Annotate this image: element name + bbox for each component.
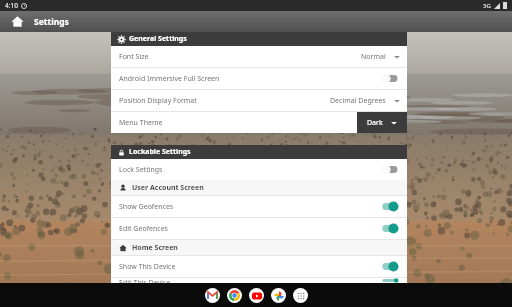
staticText: Dark <box>367 118 383 128</box>
button[interactable]: On <box>380 201 399 212</box>
button[interactable]: Lockable Settings <box>111 145 407 159</box>
button[interactable]: Off <box>380 164 399 175</box>
staticText: Edit This Device <box>119 278 171 283</box>
button[interactable]: Menu Theme <box>111 112 407 133</box>
button[interactable]: Edit Geofences <box>111 218 407 239</box>
staticText: Lock Settings <box>119 165 163 175</box>
staticText: Menu Theme <box>119 118 163 128</box>
staticText: Show This Device <box>119 262 176 272</box>
staticText: Settings <box>34 16 69 28</box>
button[interactable]: Home Screen <box>111 240 407 255</box>
button[interactable]: Position Display Format <box>111 90 407 111</box>
staticText: 3G <box>483 2 491 10</box>
staticText: Decimal Degrees <box>330 96 386 106</box>
button[interactable]: User Account Screen <box>111 180 407 195</box>
button[interactable]: On <box>380 278 399 283</box>
button[interactable]: Font Size <box>111 46 407 67</box>
staticText: Position Display Format <box>119 96 197 106</box>
staticText: Lockable Settings <box>129 147 191 157</box>
staticText: User Account Screen <box>132 183 204 193</box>
button[interactable]: Photos <box>271 288 286 303</box>
staticText: Show Geofences <box>119 202 174 212</box>
button[interactable]: Edit This Device <box>111 278 407 283</box>
button[interactable]: On <box>380 223 399 234</box>
staticText: Home Screen <box>132 243 178 253</box>
button[interactable]: Off <box>380 73 399 84</box>
button[interactable]: On <box>380 261 399 272</box>
button[interactable]: YouTube <box>249 288 264 303</box>
staticText: Normal <box>361 52 386 62</box>
button[interactable]: Home <box>0 11 34 32</box>
staticText: General Settings <box>129 34 187 44</box>
button[interactable]: General Settings <box>111 32 407 46</box>
staticText: Font Size <box>119 52 149 62</box>
button[interactable]: Chrome <box>227 288 242 303</box>
button[interactable]: All apps <box>293 288 308 303</box>
button[interactable]: Show Geofences <box>111 196 407 217</box>
button[interactable]: Gmail <box>205 288 220 303</box>
button[interactable]: Lock Settings <box>111 159 407 180</box>
staticText: Edit Geofences <box>119 224 168 234</box>
staticText: 4:10 <box>5 1 18 10</box>
button[interactable]: Show This Device <box>111 256 407 277</box>
button[interactable]: Android Immersive Full Screen <box>111 68 407 89</box>
staticText: Android Immersive Full Screen <box>119 74 220 84</box>
